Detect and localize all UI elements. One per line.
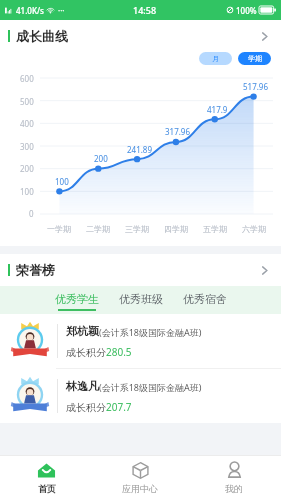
- staticText: (会计系18级国际金融A班): [99, 326, 202, 338]
- staticText: 成长积分: [66, 346, 106, 359]
- staticText: 一学期: [47, 224, 71, 234]
- staticText: (会计系18级国际金融A班): [99, 381, 202, 393]
- staticText: 207.7: [106, 400, 132, 414]
- staticText: 317.96: [165, 126, 191, 137]
- button[interactable]: 荣誉榜: [0, 254, 281, 286]
- button[interactable]: 学期: [238, 52, 271, 65]
- other: 查看成长曲线: [258, 30, 271, 43]
- staticText: 我的: [225, 483, 243, 494]
- staticText: 200: [20, 163, 34, 174]
- staticText: 100%: [236, 5, 257, 16]
- staticText: 417.9: [207, 104, 228, 115]
- staticText: 280.5: [106, 345, 132, 359]
- staticText: 四学期: [164, 224, 188, 234]
- button[interactable]: 应用中心: [93, 455, 187, 500]
- button[interactable]: 郑杭颖: [0, 314, 281, 368]
- button[interactable]: 优秀学生: [55, 286, 99, 314]
- staticText: 100: [20, 186, 34, 197]
- staticText: 41.0K/s: [16, 5, 44, 16]
- staticText: 月: [212, 54, 219, 63]
- staticText: 成长积分: [66, 401, 106, 414]
- staticText: 100: [55, 176, 69, 187]
- staticText: 成长曲线: [16, 28, 68, 44]
- staticText: 应用中心: [122, 483, 158, 494]
- staticText: 200: [94, 153, 108, 164]
- staticText: 二学期: [86, 224, 110, 234]
- staticText: 三学期: [125, 224, 149, 234]
- staticText: 500: [20, 96, 34, 107]
- button[interactable]: 优秀班级: [119, 286, 163, 314]
- staticText: 300: [20, 141, 34, 152]
- staticText: ···: [58, 5, 65, 16]
- staticText: 400: [20, 118, 34, 129]
- staticText: 首页: [38, 483, 56, 494]
- button[interactable]: 林逸凡: [0, 369, 281, 423]
- staticText: 郑杭颖: [66, 324, 99, 338]
- staticText: 六学期: [242, 224, 266, 234]
- staticText: 600: [20, 73, 34, 84]
- button[interactable]: 首页: [0, 455, 93, 500]
- button[interactable]: 成长曲线: [0, 20, 281, 52]
- staticText: 学期: [248, 54, 262, 63]
- staticText: 0: [29, 208, 34, 219]
- staticText: 优秀班级: [119, 292, 163, 306]
- staticText: 241.89: [127, 144, 153, 155]
- staticText: 优秀宿舍: [183, 292, 227, 306]
- button[interactable]: 我的: [187, 455, 281, 500]
- staticText: 优秀学生: [55, 292, 99, 306]
- staticText: 14:58: [133, 4, 157, 16]
- button[interactable]: 优秀宿舍: [183, 286, 227, 314]
- other: 查看荣誉榜: [258, 264, 271, 277]
- staticText: 517.96: [243, 81, 269, 92]
- staticText: 荣誉榜: [16, 262, 55, 278]
- staticText: 林逸凡: [66, 379, 99, 393]
- button[interactable]: 月: [199, 52, 232, 65]
- staticText: 五学期: [203, 224, 227, 234]
